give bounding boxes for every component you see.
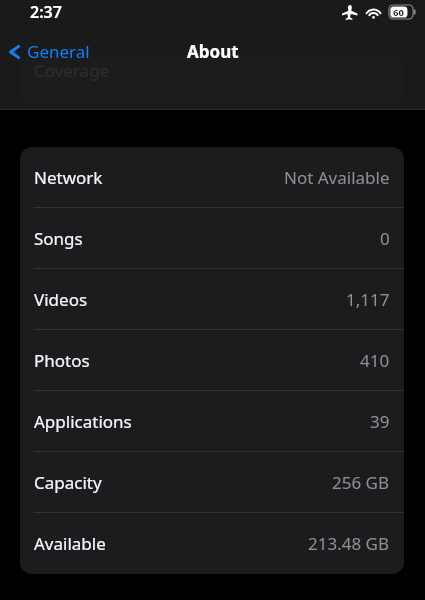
other: Back to General <box>8 41 21 63</box>
button[interactable]: Network <box>20 147 404 208</box>
other: Battery 60 percent <box>389 5 417 19</box>
staticText: Capacity <box>34 471 102 494</box>
staticText: 256 GB <box>332 471 390 494</box>
staticText: 410 <box>360 349 390 372</box>
button[interactable]: Applications <box>20 391 404 452</box>
staticText: Coverage <box>34 59 110 82</box>
staticText: General <box>27 40 90 63</box>
staticText: 2:37 <box>30 1 62 23</box>
button[interactable]: Songs <box>20 208 404 269</box>
staticText: 39 <box>370 410 390 433</box>
staticText: 0 <box>380 227 390 250</box>
staticText: 213.48 GB <box>308 532 390 555</box>
staticText: Available <box>34 532 106 555</box>
other: Airplane mode on <box>342 4 358 20</box>
button[interactable]: Back to General <box>8 40 90 63</box>
staticText: Songs <box>34 227 83 250</box>
staticText: 60 <box>393 6 404 19</box>
staticText: 1,117 <box>346 288 390 311</box>
staticText: Videos <box>34 288 88 311</box>
staticText: Applications <box>34 410 132 433</box>
staticText: About <box>187 40 239 63</box>
button[interactable]: Videos <box>20 269 404 330</box>
button[interactable]: Capacity <box>20 452 404 513</box>
staticText: Photos <box>34 349 90 372</box>
other: Wi-Fi connected <box>365 6 382 19</box>
staticText: Not Available <box>284 166 390 189</box>
staticText: Network <box>34 166 103 189</box>
button[interactable]: Photos <box>20 330 404 391</box>
button[interactable]: Available <box>20 513 404 574</box>
